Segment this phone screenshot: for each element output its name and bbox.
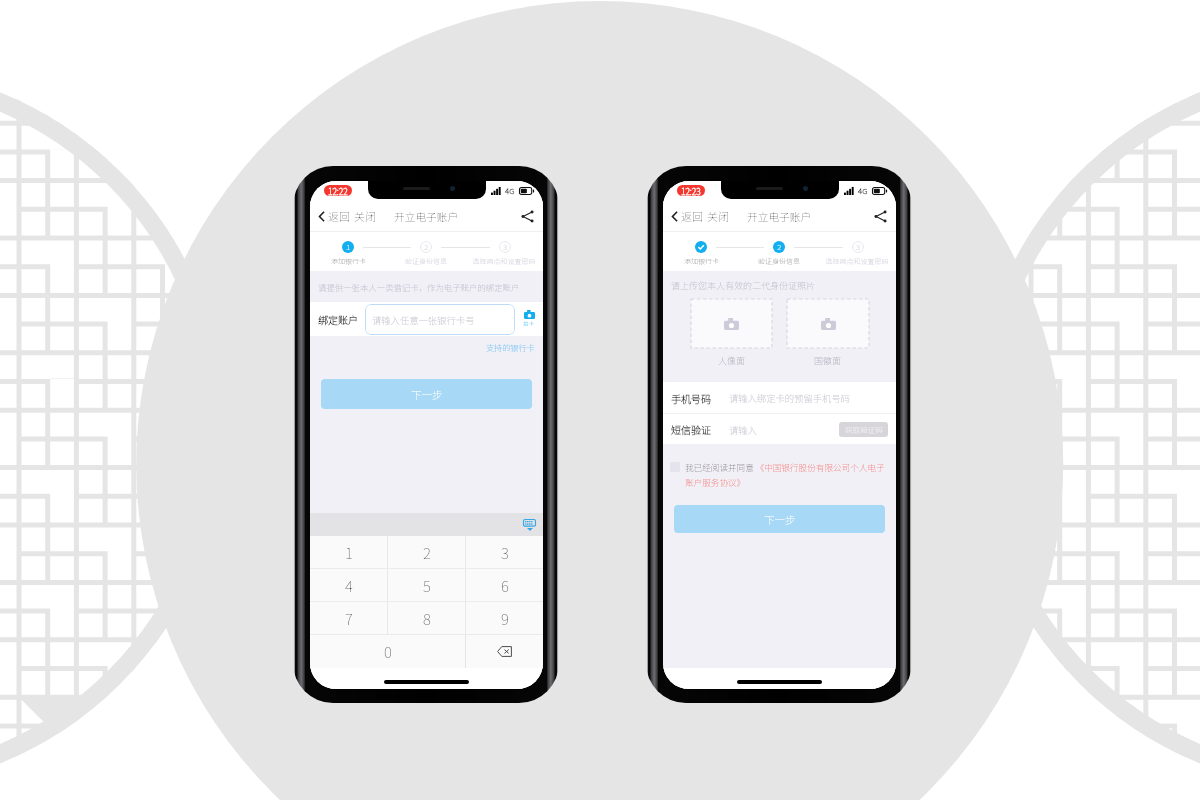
- staticText: 短信验证: [671, 422, 711, 436]
- button[interactable]: [691, 299, 772, 348]
- staticText: 1: [346, 241, 351, 253]
- staticText: 选择网点和设置密码: [818, 256, 896, 266]
- staticText: 请输入: [729, 423, 757, 436]
- staticText: 关闭: [707, 208, 729, 224]
- button[interactable]: 1: [310, 536, 387, 569]
- staticText: 5: [423, 575, 431, 597]
- staticText: 返回: [328, 208, 350, 224]
- staticText: 2: [423, 542, 431, 564]
- staticText: 下一步: [764, 512, 796, 527]
- staticText: 7: [345, 608, 353, 630]
- button[interactable]: 下一步: [321, 379, 532, 409]
- staticText: 人像面: [718, 354, 746, 367]
- staticText: 12:22: [328, 185, 348, 196]
- button[interactable]: 拍卡: [523, 310, 535, 328]
- staticText: 4: [345, 575, 353, 597]
- button[interactable]: Share: [871, 207, 890, 226]
- button[interactable]: 获取验证码: [839, 422, 888, 437]
- button[interactable]: 关闭: [353, 205, 377, 227]
- staticText: 请输入任意一张银行卡号: [372, 313, 475, 326]
- button[interactable]: 2: [388, 536, 465, 569]
- button[interactable]: 支持的银行卡: [486, 342, 543, 354]
- staticText: 获取验证码: [845, 424, 883, 435]
- button[interactable]: 4: [310, 569, 387, 602]
- staticText: 选择网点和设置密码: [465, 256, 543, 266]
- staticText: 添加银行卡: [663, 256, 740, 266]
- button[interactable]: Share: [518, 207, 537, 226]
- button[interactable]: Hide keyboard: [523, 519, 536, 531]
- staticText: 4G: [858, 185, 868, 197]
- staticText: 12:23: [681, 185, 701, 196]
- button[interactable]: 请输入任意一张银行卡号: [365, 304, 515, 335]
- button[interactable]: Delete: [466, 635, 543, 668]
- staticText: 3: [503, 241, 508, 253]
- button[interactable]: 返回: [670, 205, 705, 227]
- staticText: 绑定账户: [318, 312, 358, 326]
- staticText: 开立电子账户: [394, 209, 459, 224]
- button[interactable]: 7: [310, 602, 387, 635]
- staticText: 9: [501, 608, 509, 630]
- button[interactable]: [787, 299, 869, 348]
- staticText: 拍卡: [523, 320, 535, 328]
- staticText: 请提供一张本人一类借记卡，作为电子账户的绑定账户: [318, 281, 520, 293]
- staticText: 3: [501, 542, 509, 564]
- staticText: 返回: [681, 208, 703, 224]
- staticText: 开立电子账户: [747, 209, 812, 224]
- button[interactable]: 返回: [317, 205, 352, 227]
- staticText: 1: [345, 542, 353, 564]
- button[interactable]: 关闭: [706, 205, 730, 227]
- staticText: 8: [423, 608, 431, 630]
- staticText: 手机号码: [671, 391, 711, 405]
- button[interactable]: 3: [466, 536, 543, 569]
- staticText: 2: [424, 241, 429, 253]
- staticText: 关闭: [354, 208, 376, 224]
- button[interactable]: 0: [310, 635, 465, 668]
- staticText: 4G: [505, 185, 515, 197]
- button[interactable]: 5: [388, 569, 465, 602]
- staticText: 3: [856, 241, 861, 253]
- staticText: 6: [501, 575, 509, 597]
- button[interactable]: 8: [388, 602, 465, 635]
- button[interactable]: 6: [466, 569, 543, 602]
- button[interactable]: 9: [466, 602, 543, 635]
- staticText: 我已经阅读并同意 《中国银行股份有限公司个人电子账户服务协议》: [685, 461, 890, 488]
- staticText: 请上传您本人有效的二代身份证照片: [671, 279, 816, 292]
- staticText: 国徽面: [814, 354, 842, 367]
- staticText: 下一步: [411, 387, 443, 402]
- staticText: 验证身份信息: [740, 256, 818, 266]
- staticText: 添加银行卡: [310, 256, 387, 266]
- staticText: 验证身份信息: [387, 256, 465, 266]
- button[interactable]: 下一步: [674, 505, 885, 533]
- staticText: 请输入绑定卡的预留手机号码: [729, 391, 850, 404]
- staticText: 0: [384, 641, 392, 663]
- staticText: 2: [777, 241, 782, 253]
